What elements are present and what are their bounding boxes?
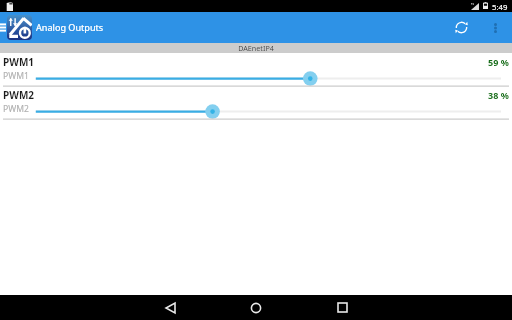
button[interactable]: Refresh (447, 12, 475, 43)
staticText: PWM1 (3, 55, 35, 69)
staticText: Analog Outputs (36, 21, 104, 33)
staticText: 59 % (488, 56, 509, 68)
staticText: PWM2 (3, 103, 29, 115)
button[interactable]: Back (160, 295, 180, 320)
staticText: 38 % (488, 89, 509, 101)
staticText: 5:49 (492, 2, 508, 13)
button[interactable]: PWM1 (0, 53, 512, 86)
button[interactable]: App icon (7, 15, 32, 40)
button[interactable]: More options (484, 12, 506, 43)
button[interactable]: PWM2 (0, 86, 512, 119)
staticText: PWM2 (3, 88, 35, 102)
button[interactable]: Recents (332, 295, 352, 320)
staticText: PWM1 (3, 70, 29, 82)
staticText: DAEnetIP4 (238, 43, 274, 53)
button[interactable]: Home (246, 295, 266, 320)
button[interactable]: Menu (0, 12, 6, 43)
